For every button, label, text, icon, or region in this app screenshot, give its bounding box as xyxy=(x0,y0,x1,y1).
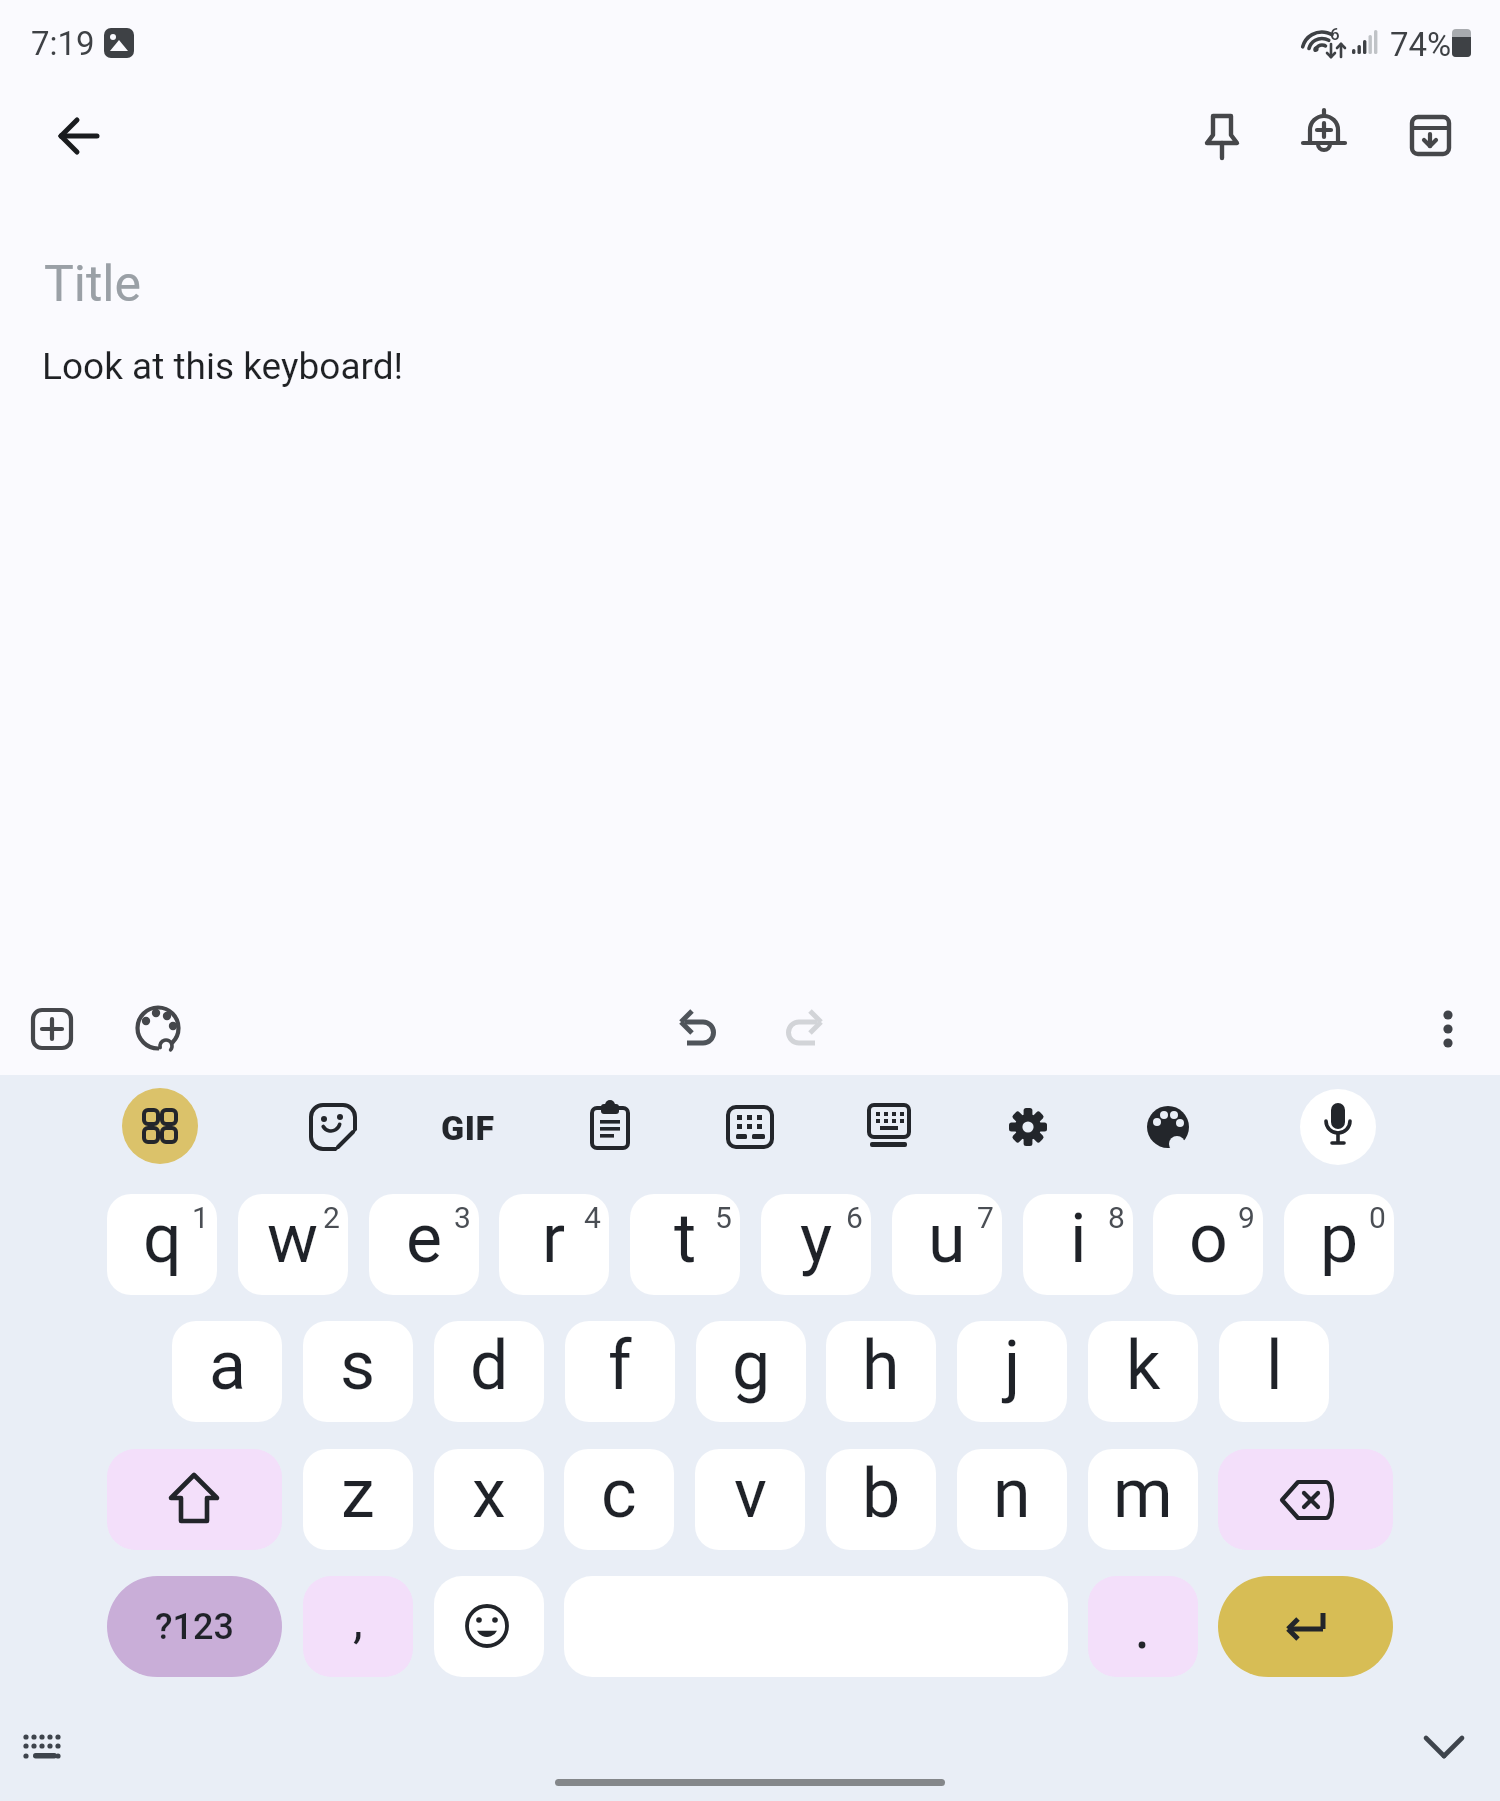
staticText: j xyxy=(1004,1326,1021,1406)
staticText: 6 xyxy=(1330,24,1340,44)
button[interactable]: d xyxy=(434,1321,544,1422)
button[interactable]: v xyxy=(695,1449,805,1550)
staticText: m xyxy=(1113,1454,1173,1534)
staticText: 6 xyxy=(846,1200,863,1235)
button[interactable] xyxy=(295,1089,371,1165)
button[interactable]: s xyxy=(303,1321,413,1422)
staticText: l xyxy=(1266,1326,1283,1406)
staticText: 2 xyxy=(323,1200,340,1235)
staticText: 9 xyxy=(1238,1200,1255,1235)
staticText: w xyxy=(267,1199,319,1279)
staticText: f xyxy=(608,1326,632,1406)
button[interactable] xyxy=(851,1089,927,1165)
staticText: i xyxy=(1070,1199,1087,1279)
staticText: 5 xyxy=(715,1200,732,1235)
button[interactable] xyxy=(712,1089,788,1165)
button[interactable] xyxy=(107,1449,282,1550)
staticText: c xyxy=(601,1454,637,1534)
button[interactable] xyxy=(1392,97,1468,173)
button[interactable] xyxy=(107,1576,282,1677)
button[interactable] xyxy=(1300,1089,1376,1165)
button[interactable]: y xyxy=(761,1194,871,1295)
button[interactable]: p xyxy=(1284,1194,1394,1295)
staticText: 4 xyxy=(584,1200,601,1235)
button[interactable] xyxy=(122,1088,198,1164)
staticText: 7:19 xyxy=(31,24,95,63)
button[interactable] xyxy=(662,991,738,1067)
button[interactable]: e xyxy=(369,1194,479,1295)
button[interactable] xyxy=(1088,1576,1198,1677)
button[interactable]: r xyxy=(499,1194,609,1295)
button[interactable]: m xyxy=(1088,1449,1198,1550)
button[interactable] xyxy=(434,1576,544,1677)
staticText: 1 xyxy=(192,1200,209,1235)
button[interactable]: n xyxy=(957,1449,1067,1550)
button[interactable] xyxy=(1410,991,1486,1067)
button[interactable]: w xyxy=(238,1194,348,1295)
staticText: Look at this keyboard! xyxy=(42,345,404,388)
staticText: b xyxy=(862,1454,901,1534)
staticText: r xyxy=(542,1199,566,1279)
staticText: x xyxy=(472,1454,506,1534)
button[interactable]: j xyxy=(957,1321,1067,1422)
button[interactable] xyxy=(1184,97,1260,173)
button[interactable]: i xyxy=(1023,1194,1133,1295)
button[interactable] xyxy=(990,1089,1066,1165)
staticText: y xyxy=(800,1199,833,1279)
button[interactable]: , xyxy=(303,1576,413,1677)
button[interactable] xyxy=(40,98,116,174)
button[interactable]: g xyxy=(696,1321,806,1422)
button[interactable] xyxy=(767,991,843,1067)
button[interactable] xyxy=(432,1089,508,1165)
button[interactable]: k xyxy=(1088,1321,1198,1422)
staticText: o xyxy=(1189,1199,1228,1279)
staticText: u xyxy=(928,1199,966,1279)
staticText: k xyxy=(1126,1326,1161,1406)
button[interactable]: b xyxy=(826,1449,936,1550)
button[interactable] xyxy=(1286,97,1362,173)
staticText: Title xyxy=(44,255,142,314)
staticText: g xyxy=(732,1326,771,1406)
staticText: 3 xyxy=(454,1200,471,1235)
button[interactable] xyxy=(14,991,90,1067)
staticText: ?123 xyxy=(155,1606,234,1648)
button[interactable]: c xyxy=(564,1449,674,1550)
button[interactable]: u xyxy=(892,1194,1002,1295)
staticText: 7 xyxy=(977,1200,994,1235)
staticText: e xyxy=(406,1199,443,1279)
button[interactable]: h xyxy=(826,1321,936,1422)
staticText: v xyxy=(734,1454,767,1534)
staticText: d xyxy=(470,1326,509,1406)
staticText: 8 xyxy=(1108,1200,1125,1235)
staticText: s xyxy=(340,1326,376,1406)
staticText: 0 xyxy=(1369,1200,1386,1235)
button[interactable]: q xyxy=(107,1194,217,1295)
staticText: a xyxy=(209,1326,246,1406)
staticText: p xyxy=(1320,1199,1359,1279)
staticText: , xyxy=(353,1591,363,1650)
button[interactable]: t xyxy=(630,1194,740,1295)
staticText: z xyxy=(341,1454,375,1534)
staticText: t xyxy=(674,1199,697,1279)
button[interactable]: z xyxy=(303,1449,413,1550)
staticText: GIF xyxy=(441,1108,495,1148)
button[interactable] xyxy=(572,1089,648,1165)
staticText: h xyxy=(862,1326,900,1406)
staticText: 74% xyxy=(1390,25,1452,64)
button[interactable] xyxy=(1218,1576,1393,1677)
button[interactable]: a xyxy=(172,1321,282,1422)
staticText: n xyxy=(993,1454,1031,1534)
button[interactable]: x xyxy=(434,1449,544,1550)
button[interactable]: l xyxy=(1219,1321,1329,1422)
button[interactable] xyxy=(1218,1449,1393,1550)
staticText: q xyxy=(143,1199,182,1279)
button[interactable] xyxy=(1130,1089,1206,1165)
button[interactable]: f xyxy=(565,1321,675,1422)
button[interactable] xyxy=(120,990,196,1066)
button[interactable]: o xyxy=(1153,1194,1263,1295)
